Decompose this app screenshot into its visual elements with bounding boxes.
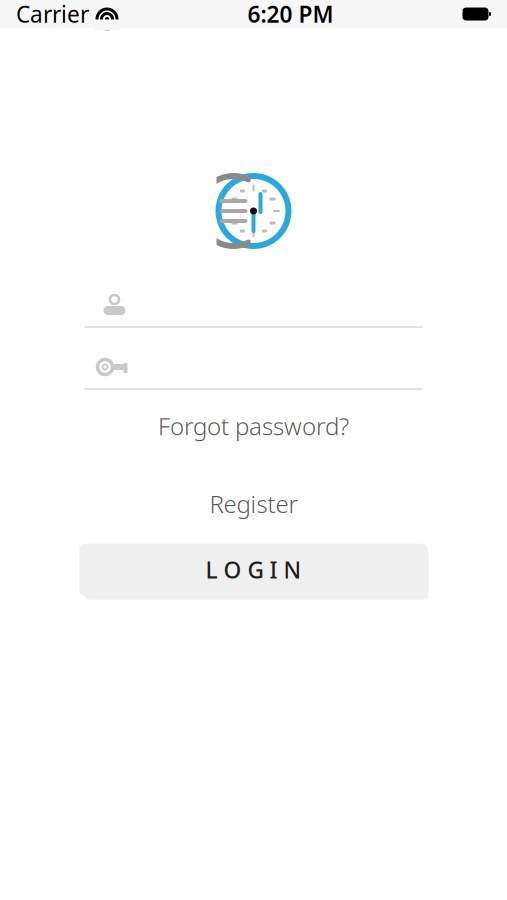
- staticText: Carrier: [16, 0, 89, 29]
- staticText: L O G I N: [205, 555, 301, 585]
- staticText: 6:20 PM: [247, 0, 333, 29]
- button[interactable]: Forgot password?: [144, 404, 363, 448]
- button[interactable]: Register: [195, 482, 311, 526]
- staticText: Forgot password?: [158, 410, 349, 442]
- button[interactable]: L O G I N: [73, 538, 433, 602]
- staticText: Register: [209, 488, 297, 520]
